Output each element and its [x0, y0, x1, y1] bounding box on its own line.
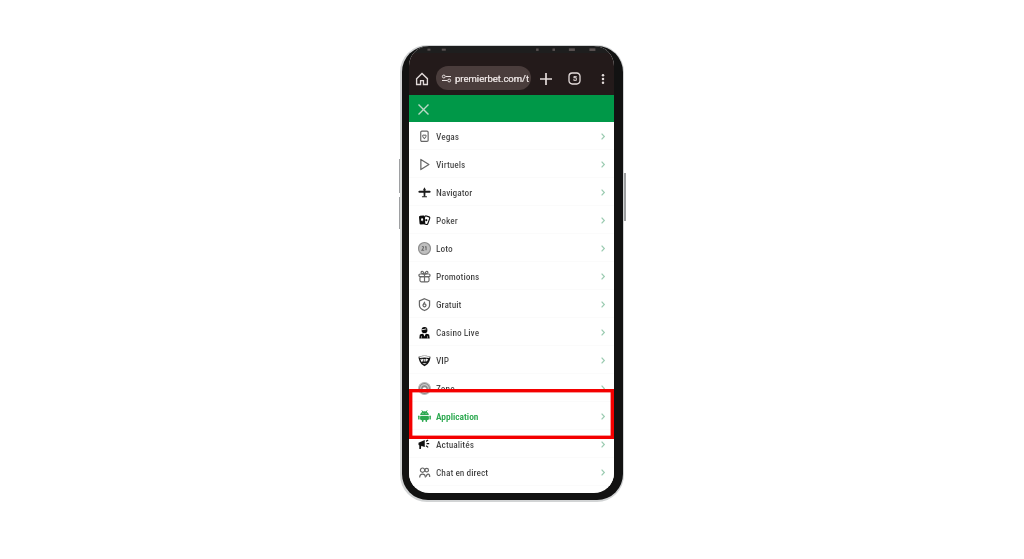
button[interactable]: Navigator — [409, 178, 614, 206]
staticText: VIP — [436, 355, 450, 366]
staticText: Navigator — [436, 187, 473, 198]
button[interactable]: Actualités — [409, 430, 614, 458]
button[interactable]: VIP — [409, 346, 614, 374]
button[interactable]: Poker — [409, 206, 614, 234]
button[interactable]: Chat en direct — [409, 458, 614, 486]
button[interactable]: Zone — [409, 374, 614, 402]
button[interactable]: Gratuit — [409, 290, 614, 318]
button[interactable]: premierbet.com/t — [436, 66, 531, 90]
button[interactable]: Casino Live — [409, 318, 614, 346]
staticText: Loto — [436, 243, 453, 254]
staticText: Gratuit — [436, 299, 462, 310]
staticText: premierbet.com/t — [455, 73, 530, 84]
staticText: Promotions — [436, 271, 480, 282]
staticText: Virtuels — [436, 159, 466, 170]
staticText: Casino Live — [436, 327, 480, 338]
button[interactable]: Application — [409, 402, 614, 430]
button[interactable]: Promotions — [409, 262, 614, 290]
staticText: Vegas — [436, 131, 460, 142]
staticText: 5 — [573, 75, 577, 83]
staticText: Chat en direct — [436, 467, 489, 478]
button[interactable]: Loto — [409, 234, 614, 262]
staticText: Zone — [436, 383, 455, 394]
button[interactable]: New tab — [535, 68, 556, 89]
button[interactable]: Vegas — [409, 122, 614, 150]
staticText: Application — [436, 411, 479, 422]
button[interactable]: Close menu — [414, 100, 432, 118]
button[interactable]: Virtuels — [409, 150, 614, 178]
staticText: Actualités — [436, 439, 474, 450]
button[interactable]: Tabs — [564, 68, 585, 89]
button[interactable]: More options — [592, 68, 613, 89]
staticText: Poker — [436, 215, 458, 226]
button[interactable]: Home — [411, 68, 432, 89]
